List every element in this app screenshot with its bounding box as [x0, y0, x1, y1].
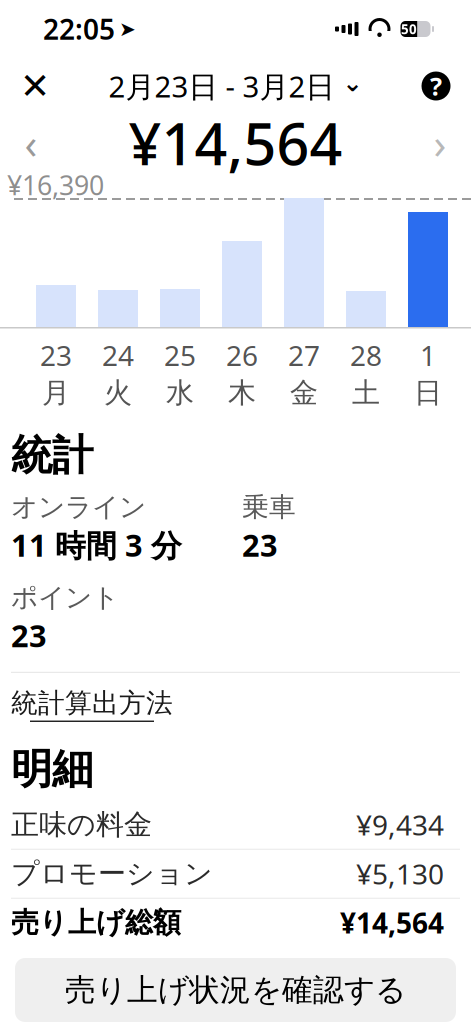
staticText: 1: [420, 336, 436, 374]
staticText: 火: [104, 376, 132, 410]
staticText: 22:05: [43, 10, 115, 48]
staticText: 26: [226, 336, 258, 374]
staticText: 23: [11, 615, 47, 656]
staticText: 正味の料金: [11, 807, 152, 842]
staticText: 統計算出方法: [11, 687, 173, 720]
staticText: 2月23日 - 3月2日: [108, 66, 334, 105]
button[interactable]: ヘルプ: [414, 64, 458, 108]
staticText: 乗車: [242, 491, 296, 524]
staticText: 売り上げ総額: [11, 905, 181, 940]
staticText: 木: [228, 376, 256, 410]
staticText: 23: [242, 525, 278, 565]
staticText: ›: [433, 116, 446, 170]
button[interactable]: 閉じる: [13, 64, 57, 108]
staticText: 月: [42, 376, 70, 410]
staticText: 50: [401, 20, 417, 38]
staticText: ?: [430, 69, 442, 103]
staticText: ➤: [119, 18, 136, 40]
button[interactable]: 2月23日 - 3月2日: [102, 64, 368, 108]
staticText: 金: [290, 376, 318, 410]
staticText: 明細: [11, 744, 93, 795]
staticText: 売り上げ状況を確認する: [65, 971, 406, 1009]
staticText: 24: [102, 336, 134, 374]
button[interactable]: 統計算出方法: [11, 673, 460, 738]
staticText: 土: [352, 376, 380, 410]
staticText: ポイント: [11, 581, 119, 614]
staticText: 25: [164, 336, 196, 374]
staticText: 日: [414, 376, 442, 410]
staticText: ¥5,130: [356, 855, 444, 892]
staticText: ⌄: [342, 69, 362, 97]
staticText: ¥14,564: [128, 105, 342, 181]
staticText: 28: [350, 336, 382, 374]
staticText: オンライン: [11, 491, 146, 524]
staticText: プロモーション: [11, 856, 213, 891]
staticText: 23: [40, 336, 72, 374]
staticText: ¥14,564: [340, 904, 444, 941]
staticText: ‹: [24, 116, 37, 170]
staticText: 11 時間 3 分: [11, 525, 182, 565]
button[interactable]: 売り上げ状況を確認する: [15, 958, 456, 1022]
staticText: 27: [288, 336, 320, 374]
staticText: ¥16,390: [7, 167, 104, 203]
button[interactable]: 次の週: [418, 118, 462, 168]
staticText: ✕: [20, 66, 50, 106]
staticText: ¥9,434: [356, 806, 444, 843]
staticText: 統計: [11, 430, 93, 481]
button[interactable]: 前の週: [9, 118, 53, 168]
staticText: 水: [166, 376, 194, 410]
